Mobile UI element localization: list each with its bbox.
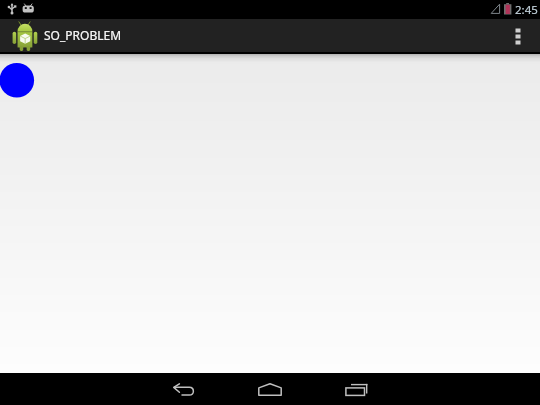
button[interactable]: SO_PROBLEM: [0, 19, 130, 54]
button[interactable]: Recents: [313, 373, 399, 405]
staticText: SO_PROBLEM: [44, 27, 122, 43]
button[interactable]: Back: [141, 373, 227, 405]
button[interactable]: Home: [227, 373, 313, 405]
button[interactable]: More options: [499, 19, 537, 54]
staticText: 2:45: [515, 2, 538, 18]
